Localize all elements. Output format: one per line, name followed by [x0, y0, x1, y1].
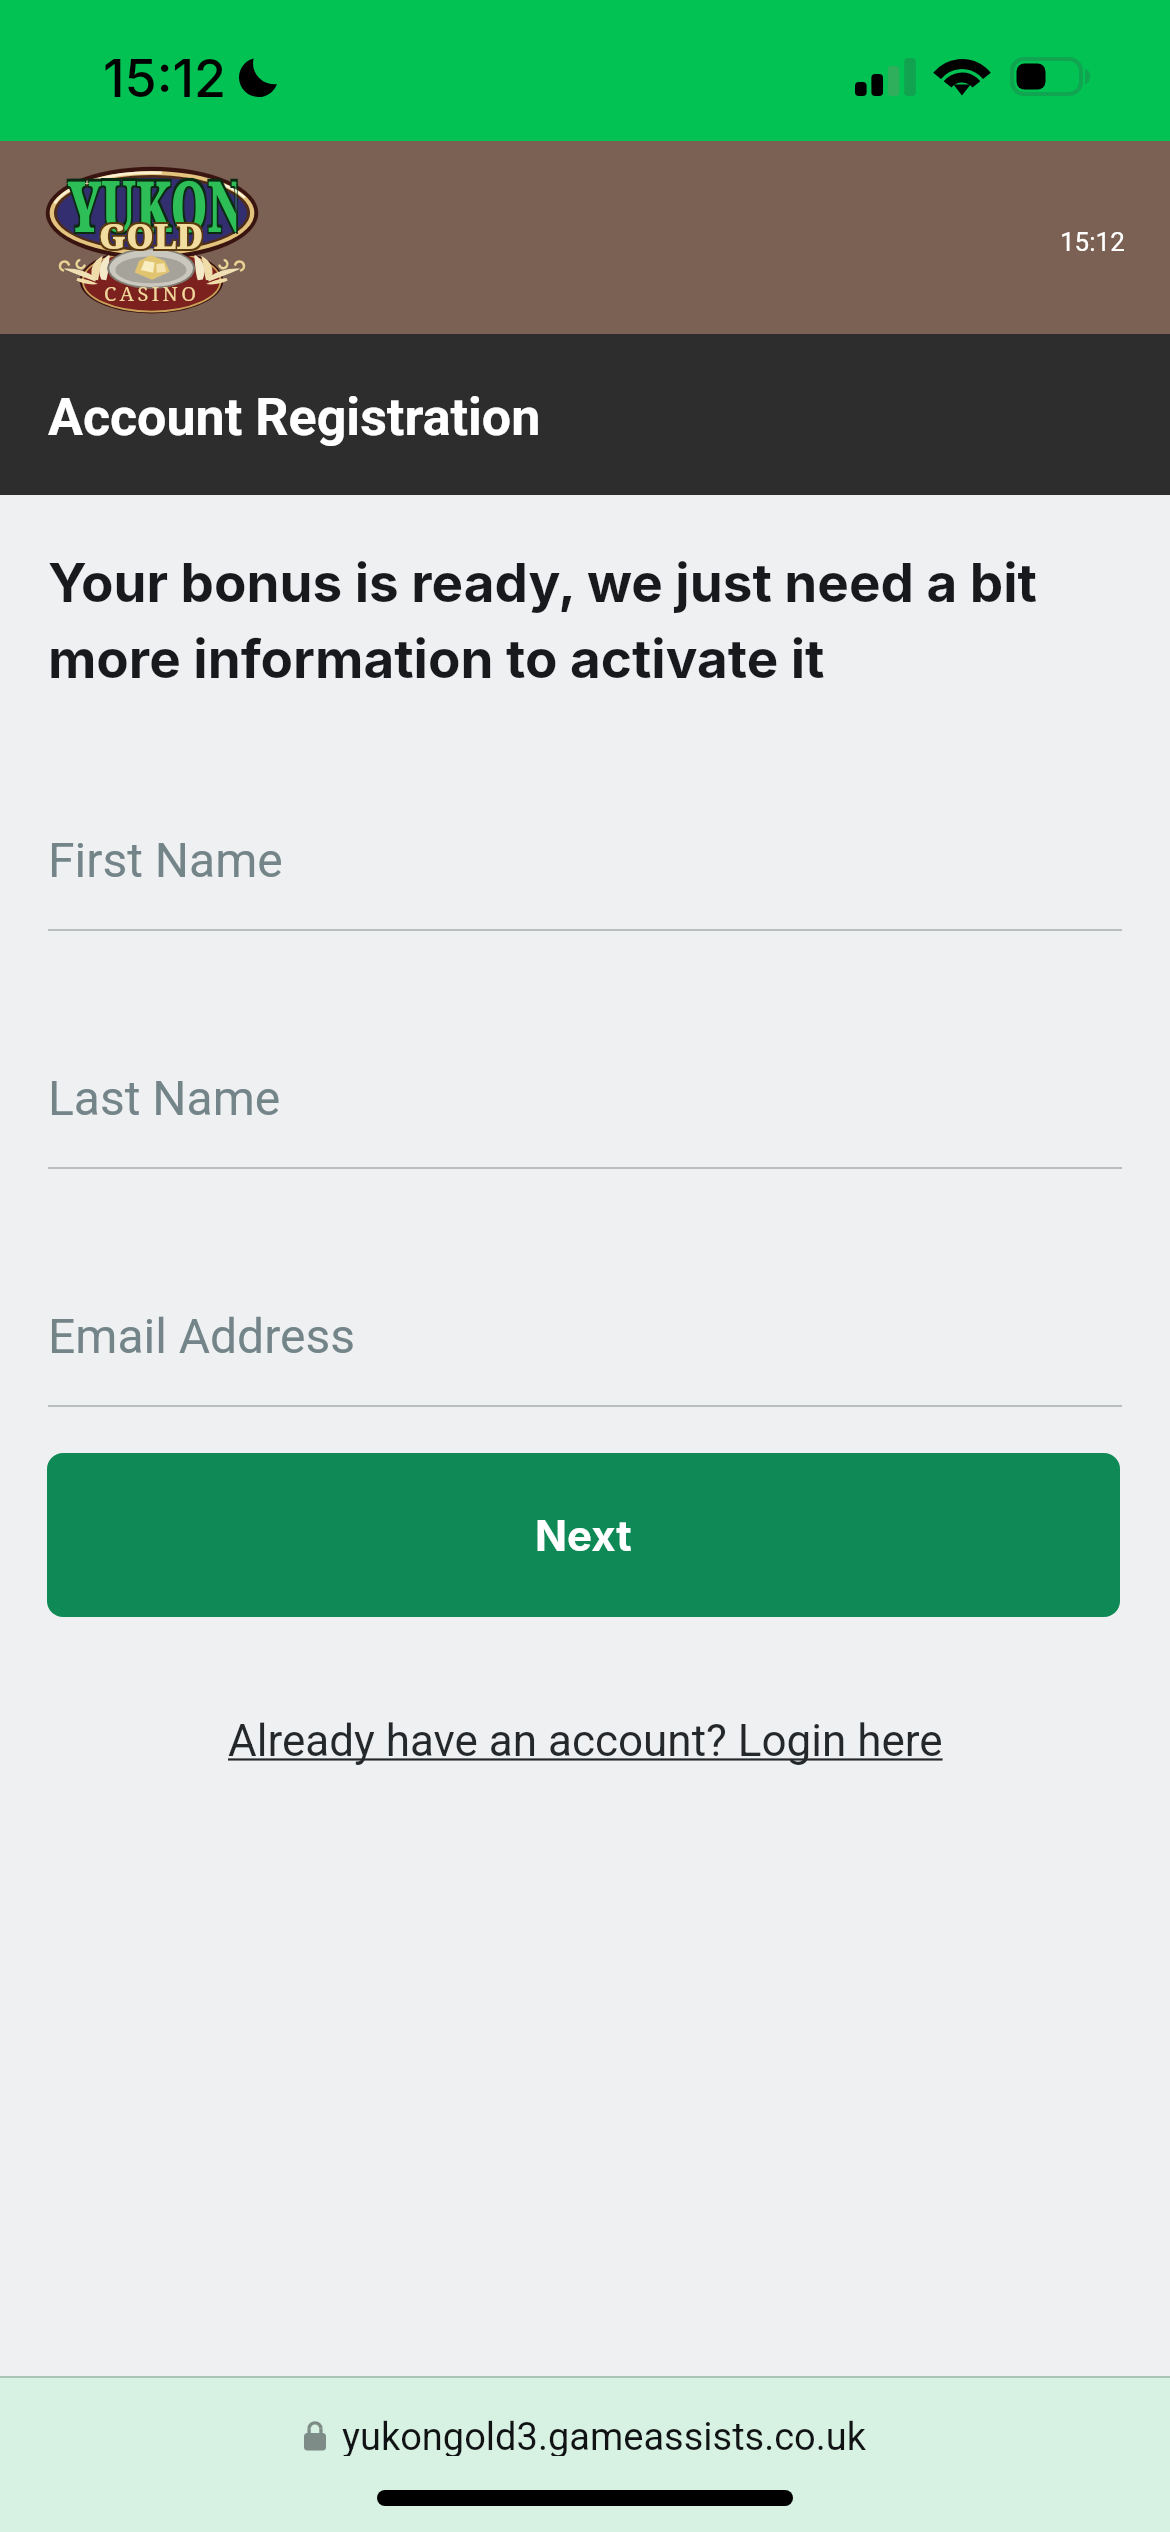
- button[interactable]: First Name: [48, 815, 1122, 943]
- staticText: Next: [535, 1510, 632, 1561]
- staticText: YUKON: [68, 156, 236, 252]
- staticText: GOLD: [97, 214, 202, 260]
- staticText: Your bonus is ready, we just need a bit …: [48, 551, 1058, 691]
- staticText: GOLD: [101, 210, 205, 257]
- button[interactable]: Last Name: [48, 1053, 1122, 1181]
- staticText: Already have an account? Login here: [228, 1715, 943, 1767]
- staticText: 15:12: [103, 47, 227, 110]
- button[interactable]: Secure connection: [0, 2398, 1170, 2456]
- button[interactable]: Already have an account? Login here: [220, 1707, 951, 1775]
- staticText: YUKON: [66, 158, 235, 255]
- staticText: YUKON: [66, 154, 235, 250]
- staticText: YUKON: [69, 154, 238, 250]
- staticText: GOLD: [101, 214, 205, 260]
- staticText: GOLD: [97, 210, 202, 257]
- staticText: YUKON: [69, 158, 238, 255]
- staticText: CASINO: [104, 280, 200, 307]
- staticText: GOLD: [99, 212, 204, 259]
- staticText: 15:12: [1060, 227, 1125, 257]
- staticText: Last Name: [48, 1070, 281, 1126]
- button[interactable]: Email Address: [48, 1291, 1122, 1419]
- button[interactable]: Next: [47, 1453, 1120, 1617]
- staticText: yukongold3.gameassists.co.uk: [342, 2415, 866, 2456]
- other: Secure connection: [304, 2421, 326, 2451]
- staticText: Account Registration: [48, 387, 541, 448]
- button[interactable]: Yukon Gold Casino home: [44, 164, 260, 318]
- staticText: Email Address: [48, 1308, 356, 1364]
- staticText: First Name: [48, 832, 283, 888]
